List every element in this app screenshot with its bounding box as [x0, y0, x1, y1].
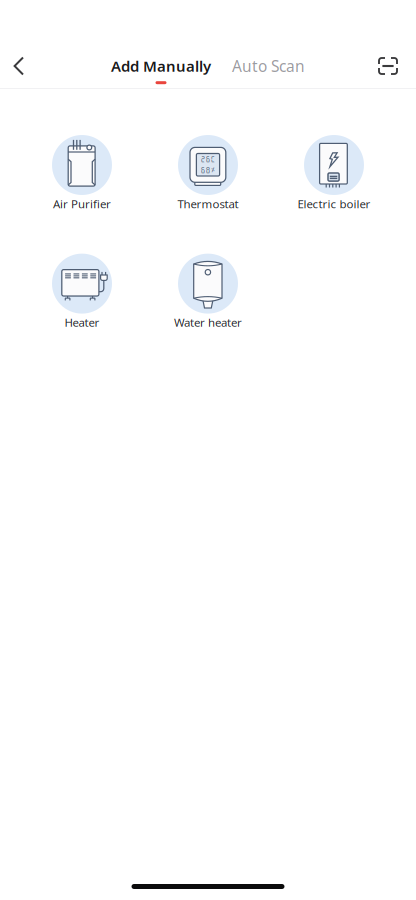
staticText: Thermostat	[177, 196, 238, 212]
button[interactable]: Heater	[19, 254, 145, 330]
staticText: Heater	[64, 315, 99, 330]
staticText: Water heater	[174, 315, 242, 330]
button[interactable]: Water heater	[145, 254, 271, 330]
staticText: 68%	[200, 166, 215, 174]
button[interactable]: 26c	[145, 135, 271, 212]
button[interactable]: Scan QR code	[366, 44, 410, 88]
button[interactable]: Add Manually	[111, 48, 211, 84]
staticText: Auto Scan	[232, 55, 305, 77]
staticText: Add Manually	[111, 56, 211, 76]
button[interactable]: Electric boiler	[271, 135, 397, 212]
staticText: Air Purifier	[53, 196, 111, 212]
button[interactable]: Auto Scan	[232, 47, 305, 85]
button[interactable]: Air Purifier	[19, 135, 145, 212]
button[interactable]: Back	[0, 44, 39, 88]
staticText: 26c	[200, 155, 215, 163]
staticText: Electric boiler	[297, 196, 370, 212]
